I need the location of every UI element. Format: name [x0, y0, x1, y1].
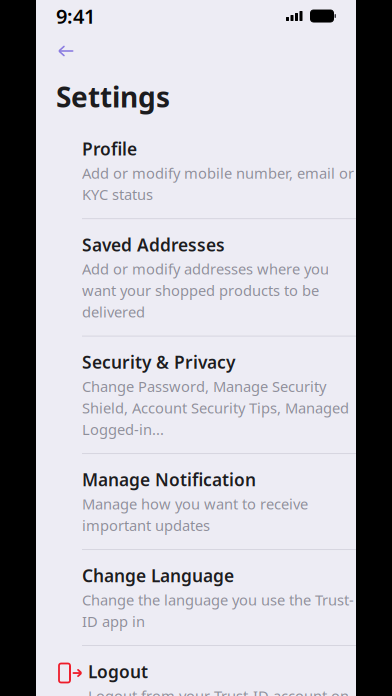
button[interactable]: Saved Addresses — [36, 219, 356, 337]
staticText: Manage Notification — [82, 468, 256, 491]
staticText: Change Password, Manage Security Shield,… — [82, 377, 349, 439]
staticText: Logout from your Trust-ID account on thi… — [88, 686, 349, 696]
staticText: Saved Addresses — [82, 233, 225, 256]
button[interactable]: Manage Notification — [36, 454, 356, 550]
staticText: Change the language you use the Trust-ID… — [82, 590, 354, 631]
staticText: 9:41 — [56, 3, 95, 29]
button[interactable]: Profile — [36, 123, 356, 219]
staticText: Add or modify addresses where you want y… — [82, 259, 329, 322]
staticText: Change Language — [82, 564, 234, 587]
button[interactable]: Security & Privacy — [36, 337, 356, 454]
staticText: Profile — [82, 137, 137, 160]
staticText: Settings — [56, 78, 170, 115]
button[interactable]: Change Language — [36, 550, 356, 646]
staticText: Add or modify mobile number, email or KY… — [82, 163, 354, 204]
button[interactable]: Logout — [36, 646, 356, 696]
staticText: Security & Privacy — [82, 351, 235, 374]
staticText: Manage how you want to receive important… — [82, 494, 308, 535]
staticText: Logout — [88, 660, 148, 683]
button[interactable]: Back — [36, 32, 88, 66]
